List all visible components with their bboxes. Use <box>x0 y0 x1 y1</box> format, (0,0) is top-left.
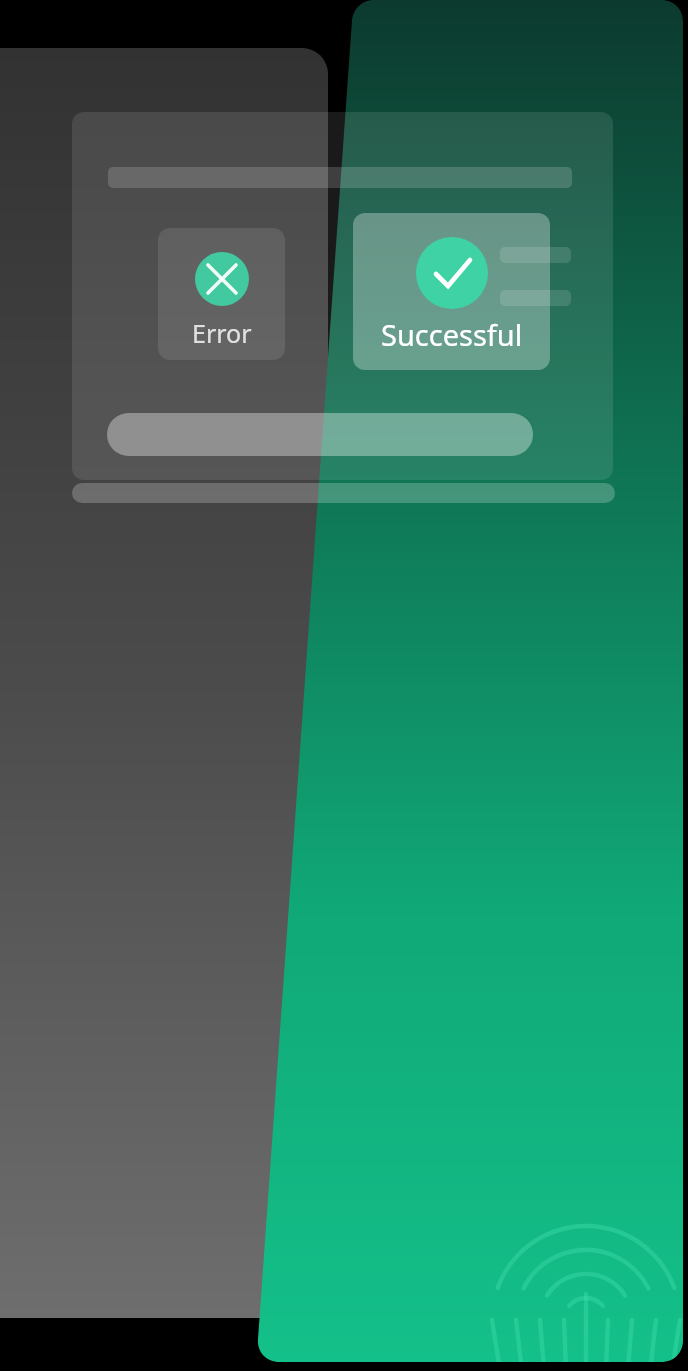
button[interactable]: Confirm <box>107 413 533 456</box>
button[interactable]: Error <box>158 228 285 360</box>
staticText: Successful <box>381 315 523 354</box>
button[interactable] <box>72 112 613 480</box>
button[interactable]: Successful <box>353 213 550 370</box>
staticText: Error <box>192 316 252 350</box>
